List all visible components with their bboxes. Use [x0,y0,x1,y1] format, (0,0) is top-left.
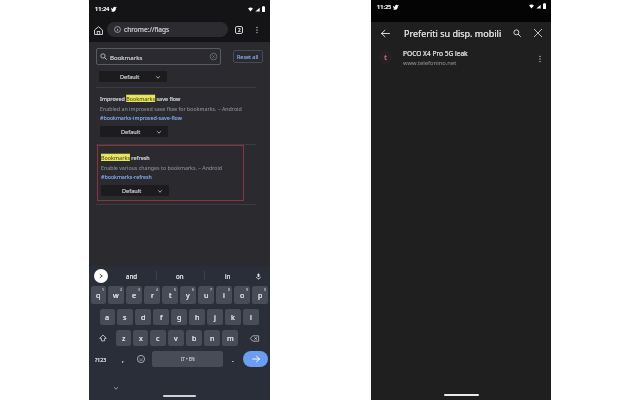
staticText: Improved Bookmarks save flow [100,95,181,102]
staticText: r [151,290,154,300]
button[interactable]: w [108,286,124,304]
button[interactable]: IT • EN [152,351,223,367]
staticText: ?123 [95,356,107,363]
button[interactable]: Search [509,25,525,41]
button[interactable]: chrome://flags [107,22,228,37]
staticText: www.telefonino.net [403,59,457,67]
staticText: t [384,53,388,63]
button[interactable]: Home [90,22,106,38]
staticText: o [240,290,245,300]
staticText: k [231,312,235,322]
button[interactable]: Close [530,25,546,41]
button[interactable]: Backspace [239,330,269,346]
button[interactable]: f [153,309,169,325]
staticText: b [192,333,197,343]
button[interactable]: i [216,286,232,304]
button[interactable]: on [156,266,204,285]
staticText: 2 [238,27,241,33]
staticText: 11:24 [95,5,110,13]
button[interactable]: Emoji [132,351,150,367]
button[interactable]: u [198,286,214,304]
button[interactable]: m [222,330,238,346]
button[interactable]: q [91,286,106,304]
staticText: and [126,272,138,280]
button[interactable]: e [126,286,142,304]
button[interactable]: More options [251,24,263,36]
button[interactable]: in [204,266,252,285]
staticText: 4 [156,287,158,292]
staticText: c [156,333,160,343]
staticText: w [113,290,119,300]
staticText: chrome://flags [124,25,170,34]
staticText: g [177,312,182,322]
staticText: n [210,333,215,343]
button[interactable]: #bookmarks-improved-save-flow [100,114,182,121]
staticText: 3 [138,287,140,292]
button[interactable]: a [100,309,115,325]
button[interactable]: p [252,286,268,304]
staticText: p [258,290,263,300]
button[interactable]: n [204,330,220,346]
button[interactable]: h [189,309,205,325]
button[interactable]: t [162,286,178,304]
button[interactable]: Default [100,126,168,137]
staticText: z [122,333,126,343]
staticText: Enabled an improved save flow for bookma… [100,105,242,112]
button[interactable]: o [234,286,250,304]
button[interactable]: v [168,330,184,346]
button[interactable]: and [108,266,156,285]
button[interactable]: Enter [243,351,268,367]
button[interactable]: b [186,330,202,346]
staticText: i [223,290,225,300]
staticText: j [214,312,216,322]
staticText: . [232,355,234,364]
button[interactable]: #bookmarks-refresh [101,173,152,180]
button[interactable]: Shift [90,330,115,346]
button[interactable]: Bookmarks [96,48,221,65]
button[interactable]: g [171,309,187,325]
staticText: 0 [264,287,266,292]
button[interactable]: j [207,309,223,325]
staticText: l [250,312,252,322]
button[interactable]: d [135,309,151,325]
button[interactable]: Tabs [231,22,247,38]
button[interactable]: c [150,330,166,346]
staticText: Preferiti su disp. mobili [404,27,502,39]
button[interactable]: Default [101,185,169,196]
button[interactable]: s [117,309,133,325]
button[interactable]: l [243,309,259,325]
button[interactable]: More suggestions [94,269,108,283]
staticText: u [204,290,209,300]
button[interactable]: t [371,43,551,72]
button[interactable]: z [116,330,131,346]
staticText: in [225,272,231,280]
staticText: 5 [174,287,176,292]
staticText: e [132,290,137,300]
button[interactable]: Reset all [233,50,263,63]
button[interactable]: ?123 [89,351,113,367]
button[interactable]: y [180,286,196,304]
staticText: Reset all [237,53,259,60]
button[interactable]: r [144,286,160,304]
button[interactable]: , [113,351,132,367]
staticText: q [96,290,101,300]
button[interactable]: x [133,330,148,346]
button[interactable]: Voice input [252,270,264,282]
staticText: s [123,312,127,322]
staticText: IT • EN [181,356,195,362]
staticText: t [169,290,172,300]
staticText: h [195,312,200,322]
button[interactable]: Back [377,25,393,41]
button[interactable]: Hide keyboard [111,383,120,392]
staticText: 2 [120,287,122,292]
staticText: Enable various changes to bookmarks. – A… [101,164,223,171]
staticText: 1 [102,287,104,292]
button[interactable]: k [225,309,241,325]
button[interactable]: . [225,351,241,367]
staticText: x [139,333,143,343]
staticText: Default [121,128,141,136]
staticText: Default [120,73,140,81]
staticText: 9 [246,287,248,292]
button[interactable]: Default [99,71,167,82]
button[interactable]: More options [533,52,546,65]
